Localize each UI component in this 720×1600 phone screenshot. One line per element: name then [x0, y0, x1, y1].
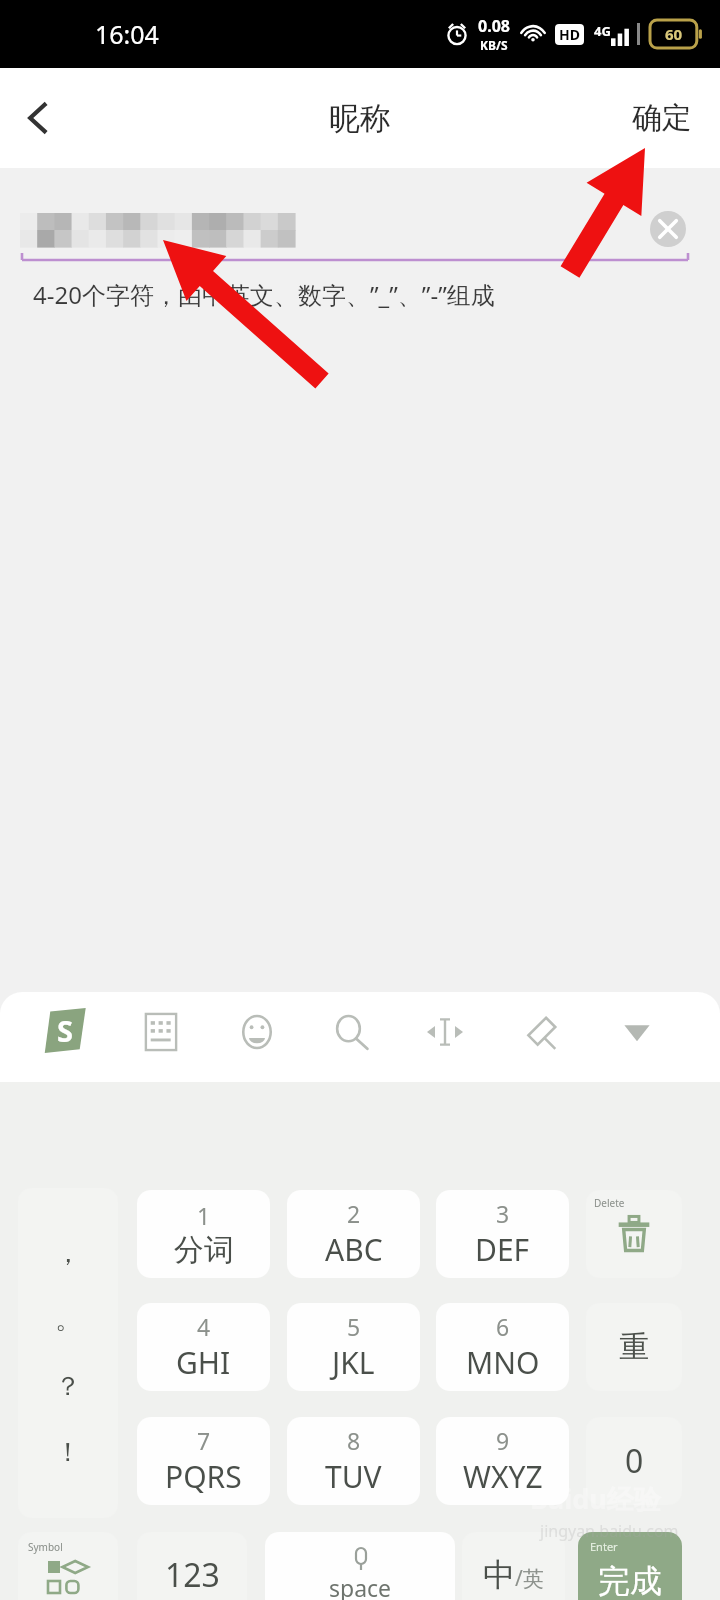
button[interactable]: Back: [0, 80, 76, 156]
staticText: 16:04: [95, 17, 159, 51]
button[interactable]: 2: [287, 1190, 420, 1278]
button[interactable]: 7: [137, 1417, 270, 1505]
staticText: ，: [55, 1237, 81, 1270]
staticText: 60: [665, 24, 683, 44]
staticText: PQRS: [165, 1456, 242, 1497]
staticText: space: [329, 1572, 392, 1600]
button[interactable]: 5: [287, 1303, 420, 1391]
staticText: ？: [55, 1370, 81, 1403]
staticText: KB/S: [480, 37, 508, 53]
button[interactable]: 8: [287, 1417, 420, 1505]
button[interactable]: 0: [586, 1417, 682, 1505]
button[interactable]: Delete: [586, 1190, 682, 1278]
staticText: 中: [483, 1555, 515, 1595]
button[interactable]: Hide keyboard: [611, 1006, 663, 1058]
button[interactable]: 123: [137, 1532, 247, 1600]
staticText: 9: [496, 1425, 510, 1456]
staticText: 昵称: [329, 99, 391, 138]
staticText: jingyan.baidu.com: [540, 1520, 679, 1542]
staticText: 重: [619, 1328, 649, 1366]
staticText: TUV: [325, 1456, 382, 1497]
staticText: ！: [55, 1436, 81, 1469]
button[interactable]: Move cursor: [419, 1006, 471, 1058]
button[interactable]: Punctuation: [18, 1188, 118, 1518]
staticText: GHI: [176, 1342, 231, 1383]
staticText: 完成: [598, 1561, 662, 1600]
staticText: 8: [347, 1425, 361, 1456]
staticText: DEF: [475, 1229, 530, 1270]
button[interactable]: Handwriting: [515, 1006, 567, 1058]
button[interactable]: Keyboard layout: [135, 1006, 187, 1058]
button[interactable]: Clear: [650, 211, 686, 247]
staticText: 。: [55, 1303, 81, 1336]
staticText: ABC: [325, 1229, 383, 1270]
staticText: 0: [625, 1439, 644, 1483]
staticText: 4G: [594, 22, 611, 40]
staticText: JKL: [332, 1342, 375, 1383]
staticText: 4: [197, 1311, 211, 1342]
button[interactable]: Search: [325, 1006, 377, 1058]
staticText: HD: [559, 25, 580, 44]
staticText: Enter: [590, 1539, 618, 1554]
staticText: 5: [347, 1311, 361, 1342]
staticText: S: [57, 1011, 73, 1050]
button[interactable]: Enter: [578, 1532, 682, 1600]
staticText: 6: [496, 1311, 510, 1342]
button[interactable]: 确定: [614, 85, 710, 151]
button[interactable]: 重: [586, 1303, 682, 1391]
button[interactable]: 1: [137, 1190, 270, 1278]
button[interactable]: Symbols: [18, 1532, 118, 1600]
staticText: 2: [347, 1198, 361, 1229]
button[interactable]: 3: [436, 1190, 569, 1278]
staticText: 7: [197, 1425, 211, 1456]
staticText: Symbol: [28, 1540, 63, 1554]
button[interactable]: Emoji: [231, 1006, 283, 1058]
button[interactable]: 6: [436, 1303, 569, 1391]
staticText: 4-20个字符，由中英文、数字、”_”、”-”组成: [33, 278, 495, 311]
staticText: 123: [165, 1553, 220, 1597]
button[interactable]: Space: [265, 1532, 455, 1600]
staticText: WXYZ: [463, 1456, 543, 1497]
staticText: Baidu经验: [530, 1480, 661, 1517]
staticText: 3: [496, 1198, 510, 1229]
staticText: 0.08: [478, 15, 510, 37]
staticText: 1: [197, 1200, 211, 1231]
staticText: /英: [515, 1564, 544, 1593]
button[interactable]: 9: [436, 1417, 569, 1505]
button[interactable]: 4: [137, 1303, 270, 1391]
staticText: Delete: [594, 1196, 625, 1210]
staticText: 分词: [174, 1231, 234, 1269]
staticText: 确定: [632, 99, 692, 137]
button[interactable]: Sogou input: [39, 1004, 91, 1056]
staticText: MNO: [466, 1342, 540, 1383]
button[interactable]: Switch language: [462, 1532, 565, 1600]
